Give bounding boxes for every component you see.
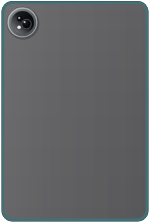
button[interactable]: Tablet rear view product image — [0, 0, 150, 223]
